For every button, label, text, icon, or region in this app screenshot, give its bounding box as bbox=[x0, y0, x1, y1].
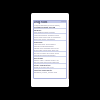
button[interactable]: Active ingredient (in each tablet) bbox=[34, 24, 67, 26]
button[interactable]: Pain reliever/fever reducer bbox=[34, 31, 67, 33]
staticText: Uses temporarily relieves minor bbox=[34, 34, 60, 36]
button[interactable]: do not take more than directed bbox=[34, 61, 67, 63]
staticText: Purpose bbox=[34, 29, 42, 31]
button[interactable]: Do not use with any other drug bbox=[34, 52, 67, 54]
button[interactable]: Other information bbox=[34, 64, 67, 66]
button[interactable]: Drug Facts bbox=[33, 20, 67, 23]
button[interactable]: Acetaminophen 500 mg bbox=[34, 26, 67, 28]
staticText: adults: take 2 tablets every 6 hr bbox=[34, 59, 59, 61]
button[interactable]: Purpose bbox=[34, 29, 67, 31]
button[interactable]: containing acetaminophen bbox=[34, 54, 67, 56]
staticText: serving bbox=[61, 21, 66, 23]
button[interactable]: adults: take 2 tablets every 6 hr bbox=[34, 59, 67, 61]
button[interactable]: Warnings bbox=[34, 41, 67, 43]
staticText: Warnings bbox=[34, 41, 43, 43]
staticText: Pain reliever/fever reducer bbox=[34, 31, 56, 33]
staticText: Severe liver damage may occur bbox=[34, 47, 59, 49]
staticText: Inactive ingredients bbox=[34, 69, 53, 71]
staticText: Other information bbox=[34, 64, 51, 66]
button[interactable]: Directions bbox=[34, 57, 67, 59]
staticText: Acetaminophen 500 mg bbox=[34, 26, 56, 28]
staticText: muscular aches, backache bbox=[34, 38, 55, 40]
staticText: aches and pains due to headache bbox=[34, 36, 61, 38]
button[interactable]: aches and pains due to headache bbox=[34, 36, 67, 38]
staticText: povidone, starch, stearic acid bbox=[34, 71, 57, 73]
button[interactable]: if you take more than 4000 mg bbox=[34, 49, 67, 51]
staticText: Directions bbox=[34, 57, 44, 59]
button[interactable]: contains acetaminophen. bbox=[34, 45, 67, 47]
button[interactable]: Uses temporarily relieves minor bbox=[34, 34, 67, 36]
staticText: store at 20-25 C (68-77 F) bbox=[34, 66, 54, 68]
staticText: contains acetaminophen. bbox=[34, 45, 55, 47]
staticText: do not take more than directed bbox=[34, 61, 59, 63]
button[interactable]: Inactive ingredients bbox=[34, 69, 67, 71]
staticText: Drug Facts bbox=[34, 20, 48, 23]
staticText: Do not use with any other drug bbox=[34, 52, 59, 54]
staticText: Liver warning: This product bbox=[34, 43, 56, 45]
button[interactable]: store at 20-25 C (68-77 F) bbox=[34, 66, 67, 68]
button[interactable]: povidone, starch, stearic acid bbox=[34, 71, 67, 73]
button[interactable]: Severe liver damage may occur bbox=[34, 47, 67, 49]
staticText: if you take more than 4000 mg bbox=[34, 49, 59, 51]
staticText: containing acetaminophen bbox=[34, 54, 56, 56]
button[interactable]: Liver warning: This product bbox=[34, 43, 67, 45]
button[interactable]: muscular aches, backache bbox=[34, 38, 67, 40]
staticText: Active ingredient (in each tablet) bbox=[34, 24, 60, 26]
